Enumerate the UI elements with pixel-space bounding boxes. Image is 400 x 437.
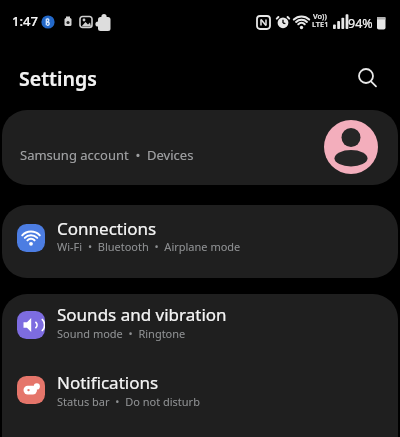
staticText: Wi-Fi • Bluetooth • Airplane mode (57, 239, 241, 254)
staticText: Settings (19, 65, 97, 92)
staticText: Sounds and vibration (57, 303, 227, 326)
staticText: Sound mode • Ringtone (57, 326, 186, 341)
button[interactable] (352, 63, 380, 91)
button[interactable]: Connections (2, 205, 398, 278)
button[interactable]: Samsung account • Devices (2, 110, 398, 185)
staticText: 94% (348, 15, 373, 32)
staticText: Connections (57, 217, 157, 240)
staticText: Vo)) (313, 11, 327, 21)
staticText: LTE1 (312, 19, 329, 29)
staticText: Samsung account • Devices (20, 146, 194, 164)
staticText: Status bar • Do not disturb (57, 394, 200, 409)
staticText: Notifications (57, 371, 159, 394)
button[interactable]: Notifications (2, 361, 398, 431)
staticText: 1:47 (12, 12, 38, 30)
button[interactable]: Sounds and vibration (2, 294, 398, 361)
